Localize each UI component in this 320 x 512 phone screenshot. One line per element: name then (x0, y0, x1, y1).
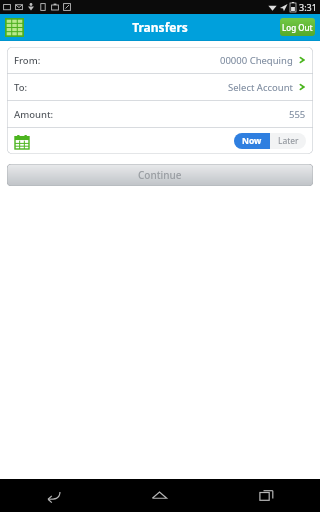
staticText: Amount: (14, 108, 54, 121)
button[interactable]: Amount: (14, 101, 306, 127)
staticText: Continue (138, 168, 182, 182)
staticText: Later (278, 135, 299, 147)
button[interactable]: Home (106, 479, 213, 512)
button[interactable]: To: (14, 74, 306, 100)
button[interactable]: Continue (7, 164, 313, 186)
button[interactable]: Pick date (14, 134, 29, 149)
button[interactable]: From: (14, 47, 306, 73)
button[interactable]: Log Out (280, 18, 315, 36)
staticText: To: (14, 81, 28, 94)
staticText: From: (14, 54, 41, 67)
staticText: Select Account (228, 81, 293, 94)
button[interactable]: Later (270, 133, 306, 149)
staticText: 555 (289, 108, 306, 121)
staticText: 00000 Chequing (220, 54, 293, 67)
staticText: Now (242, 135, 262, 147)
staticText: Transfers (132, 19, 188, 35)
button[interactable]: Menu (4, 17, 24, 37)
staticText: 3:31 (299, 1, 317, 13)
button[interactable]: Recents (213, 479, 320, 512)
button[interactable]: Back (0, 479, 106, 512)
staticText: Log Out (282, 22, 313, 33)
button[interactable]: Now (234, 133, 270, 149)
